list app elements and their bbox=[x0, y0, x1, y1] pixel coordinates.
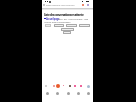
button[interactable]: Effacer bbox=[79, 24, 90, 27]
staticText: Se deconnecter bbox=[61, 29, 74, 31]
button[interactable]: Menu bbox=[63, 31, 71, 34]
button[interactable]: Home bbox=[67, 92, 70, 95]
staticText: Menu bbox=[65, 32, 70, 34]
button[interactable] bbox=[45, 24, 51, 27]
button[interactable]: Envoyer bbox=[54, 24, 64, 27]
button[interactable]: Se deconnecter bbox=[61, 28, 74, 31]
button[interactable]: Toolbar item 3 bbox=[56, 84, 60, 88]
staticText: Actualiser bbox=[67, 25, 76, 27]
button[interactable]: Back bbox=[46, 92, 49, 95]
staticText: www.example.com/liste.php bbox=[46, 4, 75, 7]
staticText: Envoyer bbox=[56, 25, 63, 27]
button[interactable]: Toolbar item 8 bbox=[87, 85, 90, 88]
button[interactable]: Tabs bbox=[77, 92, 80, 95]
staticText: Afficher seule la conversation bbox=[44, 20, 71, 23]
button[interactable]: Menu bbox=[87, 92, 90, 95]
staticText: Liste des conversations en attente bbox=[44, 13, 84, 17]
staticText: - Rech. file - Liste complete - Aide bbox=[57, 17, 88, 20]
staticText: Effacer bbox=[82, 25, 88, 27]
button[interactable]: Accueil page bbox=[46, 17, 60, 21]
button[interactable]: Forward bbox=[56, 92, 59, 95]
button[interactable]: Actualiser bbox=[66, 24, 77, 27]
